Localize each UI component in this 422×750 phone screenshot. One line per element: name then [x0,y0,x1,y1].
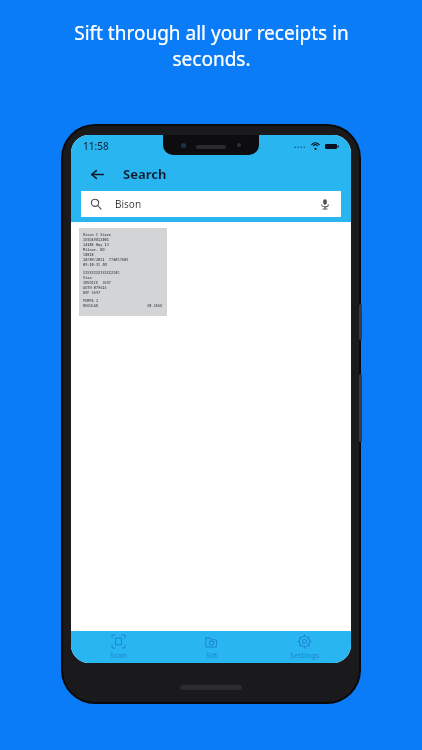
staticText: 11:58 [83,139,109,153]
button[interactable]: Back [85,162,109,186]
staticText: 14104 Hwy 13 [83,242,109,247]
staticText: Bison C Store [83,232,112,237]
staticText: seconds. [172,46,251,72]
staticText: Visa [83,275,92,280]
button[interactable]: Scan [71,631,165,663]
button[interactable]: Settings [258,631,351,663]
staticText: Milnor, ND [83,247,105,252]
button[interactable]: Sift [165,631,258,663]
staticText: Settings [290,650,320,660]
staticText: AUTH 079616 [83,285,107,290]
staticText: IESD49812001 [83,237,109,242]
staticText: XXXXXXXXXXXXX2505 [83,270,120,275]
button[interactable]: Bison [81,191,341,217]
staticText: Sift through all your receipts in [74,20,349,46]
staticText: 09:10:35 AM [83,262,107,267]
staticText: 30.346G [147,303,163,308]
staticText: Sift [206,650,218,660]
staticText: PUMP# 1 [83,298,99,303]
staticText: REF 3697 [83,290,101,295]
staticText: Search [123,165,167,183]
staticText: INVOICE 3697 [83,280,112,285]
staticText: REGULAR [83,303,99,308]
staticText: Scan [110,650,127,660]
button[interactable]: Voice search [318,197,332,211]
button[interactable]: Bison C Store [79,228,167,316]
staticText: Bison [115,197,142,211]
staticText: 10/09/2021 774057603 [83,257,129,262]
staticText: 50818 [83,252,94,257]
